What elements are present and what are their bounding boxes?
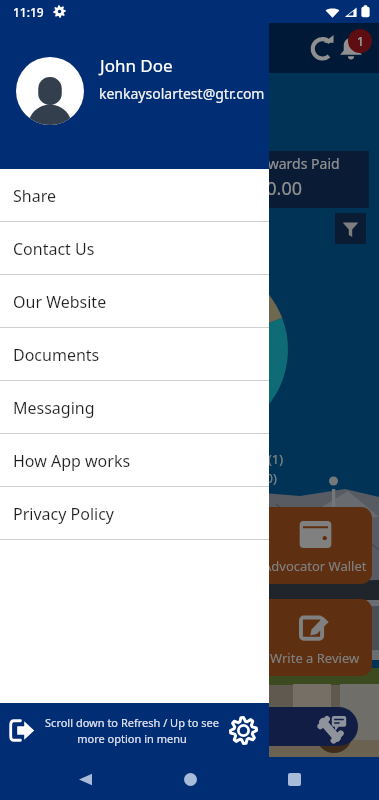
button[interactable]: Settings [223,710,263,750]
button[interactable]: Share [0,169,269,222]
button[interactable]: Privacy Policy [0,487,269,540]
staticText: $0.00 [256,176,303,201]
button[interactable]: Our Website [0,275,269,328]
staticText: Messaging [13,397,95,419]
button[interactable]: Advocator Wallet [196,507,372,584]
button[interactable]: Documents [0,328,269,381]
button[interactable]: Logout [1,710,41,750]
staticText: John Doe [100,54,173,77]
button[interactable]: Refresh [309,34,336,61]
button[interactable]: Recents [274,759,314,799]
button[interactable]: Write a Review [196,599,372,676]
button[interactable]: Messaging [0,381,269,434]
staticText: How App works [13,450,131,472]
button[interactable]: Back [65,759,105,799]
staticText: Advocator Wallet [263,557,367,575]
staticText: Sales (0) [227,469,277,487]
staticText: Privacy Policy [13,503,114,525]
staticText: Contact Us [13,238,95,260]
staticText: Referrals (1) [210,450,284,468]
staticText: 11:19 [13,4,44,20]
staticText: kenkaysolartest@gtr.com [99,84,265,103]
staticText: Write a Review [270,649,360,667]
staticText: Scroll down to Refresh / Up to see more … [41,715,223,746]
button[interactable]: Notifications [338,35,364,61]
staticText: Share [13,185,56,207]
button[interactable]: Contact us [180,707,358,746]
staticText: Total Rewards Paid [216,154,340,173]
button[interactable]: Home [170,759,210,799]
button[interactable]: How App works [0,434,269,487]
button[interactable]: Contact Us [0,222,269,275]
button[interactable]: Filter [335,213,366,244]
staticText: Documents [13,344,100,366]
staticText: 1 [357,33,364,49]
staticText: Our Website [13,291,107,313]
